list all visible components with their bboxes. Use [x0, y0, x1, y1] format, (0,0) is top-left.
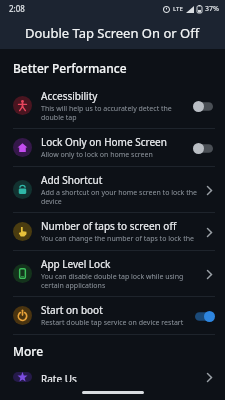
staticText: Rate Us: [41, 372, 77, 382]
staticText: You can disable double tap lock while us…: [41, 272, 197, 290]
button[interactable]: Number of taps to screen off: [0, 213, 225, 250]
staticText: Lock Only on Home Screen: [41, 135, 167, 149]
staticText: Accessibility: [41, 89, 98, 103]
button[interactable]: Add Shortcut: [0, 167, 225, 212]
staticText: Double Tap Screen On or Off: [25, 24, 200, 42]
staticText: 2:08: [9, 3, 25, 14]
button[interactable]: App Level Lock: [0, 251, 225, 296]
staticText: Restart double tap service on device res…: [41, 318, 184, 328]
staticText: Number of taps to screen off: [41, 219, 177, 233]
button[interactable]: Rate Us: [0, 366, 225, 388]
staticText: This will help us to accurately detect t…: [41, 104, 187, 122]
button[interactable]: Lock Only on Home Screen: [0, 129, 225, 166]
staticText: You can change the number of taps to loc…: [41, 234, 197, 244]
button[interactable]: Start on boot: [0, 297, 225, 334]
staticText: Add a shortcut on your home screen to lo…: [41, 188, 197, 206]
button[interactable]: Start on boot: [191, 307, 217, 325]
staticText: Start on boot: [41, 303, 103, 317]
button[interactable]: Lock Only on Home Screen: [191, 139, 217, 157]
button[interactable]: Number of taps to screen off: [201, 221, 217, 243]
button[interactable]: App Level Lock: [201, 263, 217, 285]
staticText: Allow only to lock on home screen: [41, 150, 153, 160]
staticText: More: [13, 343, 44, 359]
button[interactable]: Rate Us: [201, 372, 217, 382]
button[interactable]: Accessibility: [191, 97, 217, 115]
staticText: Better Performance: [13, 60, 127, 76]
staticText: Add Shortcut: [41, 173, 103, 187]
staticText: 37%: [205, 4, 219, 14]
staticText: App Level Lock: [41, 257, 111, 271]
button[interactable]: Accessibility: [0, 83, 225, 128]
staticText: LTE: [173, 5, 183, 13]
button[interactable]: Add Shortcut: [201, 179, 217, 201]
